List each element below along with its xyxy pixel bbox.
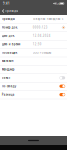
staticText: Приходы bbox=[5, 9, 18, 13]
staticText: Менеджер bbox=[2, 68, 15, 71]
button[interactable]: По складу bbox=[0, 82, 67, 90]
button[interactable]: Заказ bbox=[0, 74, 67, 82]
staticText: Товарная накладная 5 bbox=[33, 17, 64, 21]
staticText: 0000-123 bbox=[33, 26, 48, 29]
button[interactable]: Дата и время bbox=[0, 40, 67, 48]
button[interactable]: Дата док. bbox=[0, 32, 67, 40]
staticText: Дата и время bbox=[2, 42, 21, 46]
button[interactable]: Приходы bbox=[0, 7, 20, 15]
button[interactable]: Разница bbox=[0, 90, 67, 99]
staticText: 12.04.2024 bbox=[33, 34, 51, 38]
staticText: Разница bbox=[2, 93, 15, 96]
button[interactable]: Менеджер bbox=[0, 65, 67, 74]
staticText: 12:30 bbox=[33, 42, 42, 46]
staticText: По складу bbox=[2, 84, 16, 88]
staticText: Заказ bbox=[2, 76, 10, 80]
staticText: Магазин bbox=[2, 59, 14, 63]
staticText: Номер док. bbox=[2, 26, 18, 29]
button[interactable]: Магазин bbox=[0, 57, 67, 65]
staticText: 9:41 bbox=[3, 2, 10, 5]
staticText: Дата док. bbox=[2, 34, 15, 38]
button[interactable]: Номер док. bbox=[0, 23, 67, 32]
staticText: Поставщик bbox=[2, 51, 17, 54]
staticText: ООО Ромашка bbox=[33, 51, 51, 54]
staticText: Приходы bbox=[2, 17, 15, 21]
button[interactable]: Поставщик bbox=[0, 48, 67, 57]
button[interactable]: Приходы bbox=[0, 15, 67, 23]
staticText: LTE bbox=[57, 2, 60, 5]
